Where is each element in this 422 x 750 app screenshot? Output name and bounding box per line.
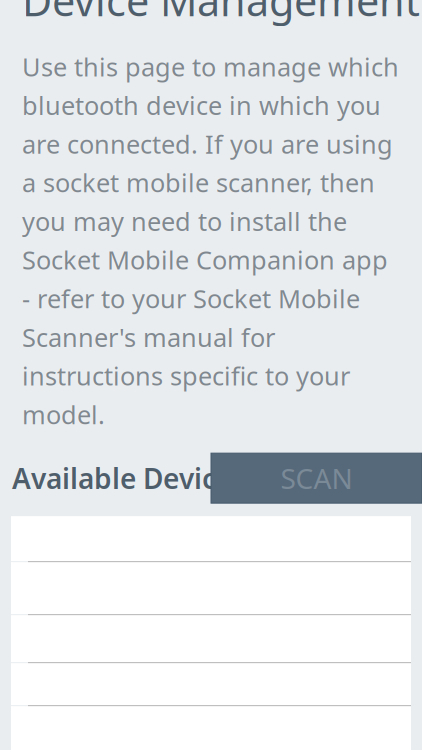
staticText: Use this page to manage which bluetooth …	[22, 50, 399, 431]
button[interactable]: SCAN	[211, 453, 422, 503]
staticText: Device Management	[22, 0, 420, 28]
staticText: Available Devices	[12, 460, 246, 497]
staticText: SCAN	[280, 460, 352, 497]
